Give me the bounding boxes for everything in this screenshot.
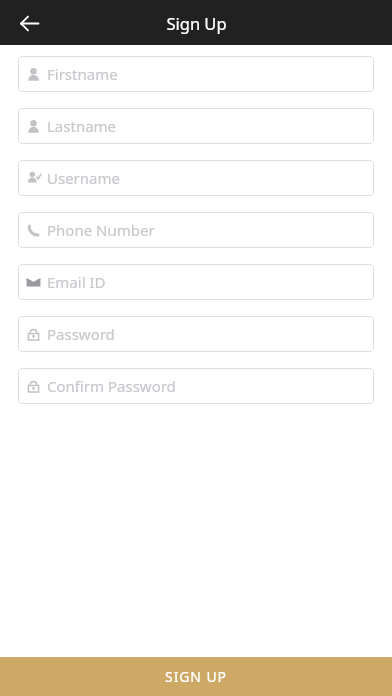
staticText: Email ID: [47, 272, 106, 292]
button[interactable]: Confirm Password: [18, 368, 374, 404]
staticText: Firstname: [47, 64, 118, 84]
staticText: Password: [47, 324, 115, 344]
button[interactable]: Firstname: [18, 56, 374, 92]
staticText: Confirm Password: [47, 376, 176, 396]
staticText: SIGN UP: [165, 667, 227, 686]
button[interactable]: Back: [12, 6, 46, 40]
staticText: Phone Number: [47, 220, 155, 240]
button[interactable]: Lastname: [18, 108, 374, 144]
button[interactable]: Email ID: [18, 264, 374, 300]
button[interactable]: Phone Number: [18, 212, 374, 248]
button[interactable]: Username: [18, 160, 374, 196]
staticText: Lastname: [47, 116, 117, 136]
button[interactable]: Password: [18, 316, 374, 352]
staticText: Sign Up: [166, 12, 227, 34]
staticText: Username: [47, 168, 120, 188]
button[interactable]: SIGN UP: [0, 657, 392, 696]
